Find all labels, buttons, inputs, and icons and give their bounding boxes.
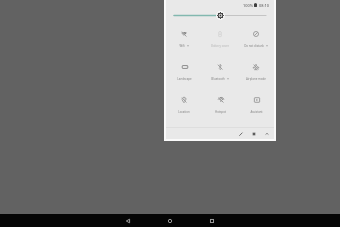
button[interactable]: Recents <box>191 214 233 227</box>
staticText: Airplane mode <box>246 77 266 81</box>
staticText: Battery saver <box>211 44 229 48</box>
button[interactable]: Home <box>149 214 191 227</box>
staticText: Assistant <box>250 110 263 114</box>
staticText: Do not disturb <box>244 44 264 48</box>
button[interactable]: Brightness <box>166 9 274 21</box>
staticText: 08:10 <box>259 3 269 8</box>
button[interactable]: Landscape <box>166 57 202 90</box>
staticText: 100% <box>243 3 253 8</box>
button[interactable]: Battery saver <box>202 24 238 57</box>
button[interactable]: Airplane mode <box>238 57 274 90</box>
button[interactable]: Wifi <box>166 24 202 57</box>
staticText: Wifi <box>179 44 185 48</box>
button[interactable]: Collapse <box>263 130 271 138</box>
button[interactable]: Bluetooth <box>202 57 238 90</box>
staticText: Bluetooth <box>211 77 225 81</box>
button[interactable]: Settings <box>250 130 258 138</box>
button[interactable]: Location <box>166 90 202 123</box>
button[interactable]: Back <box>107 214 149 227</box>
button[interactable]: Edit <box>237 130 245 138</box>
button[interactable]: Assistant <box>238 90 274 123</box>
button[interactable]: Do not disturb <box>238 24 274 57</box>
staticText: Landscape <box>177 77 192 81</box>
staticText: Location <box>178 110 190 114</box>
button[interactable]: Hotspot <box>202 90 238 123</box>
staticText: Hotspot <box>215 110 226 114</box>
